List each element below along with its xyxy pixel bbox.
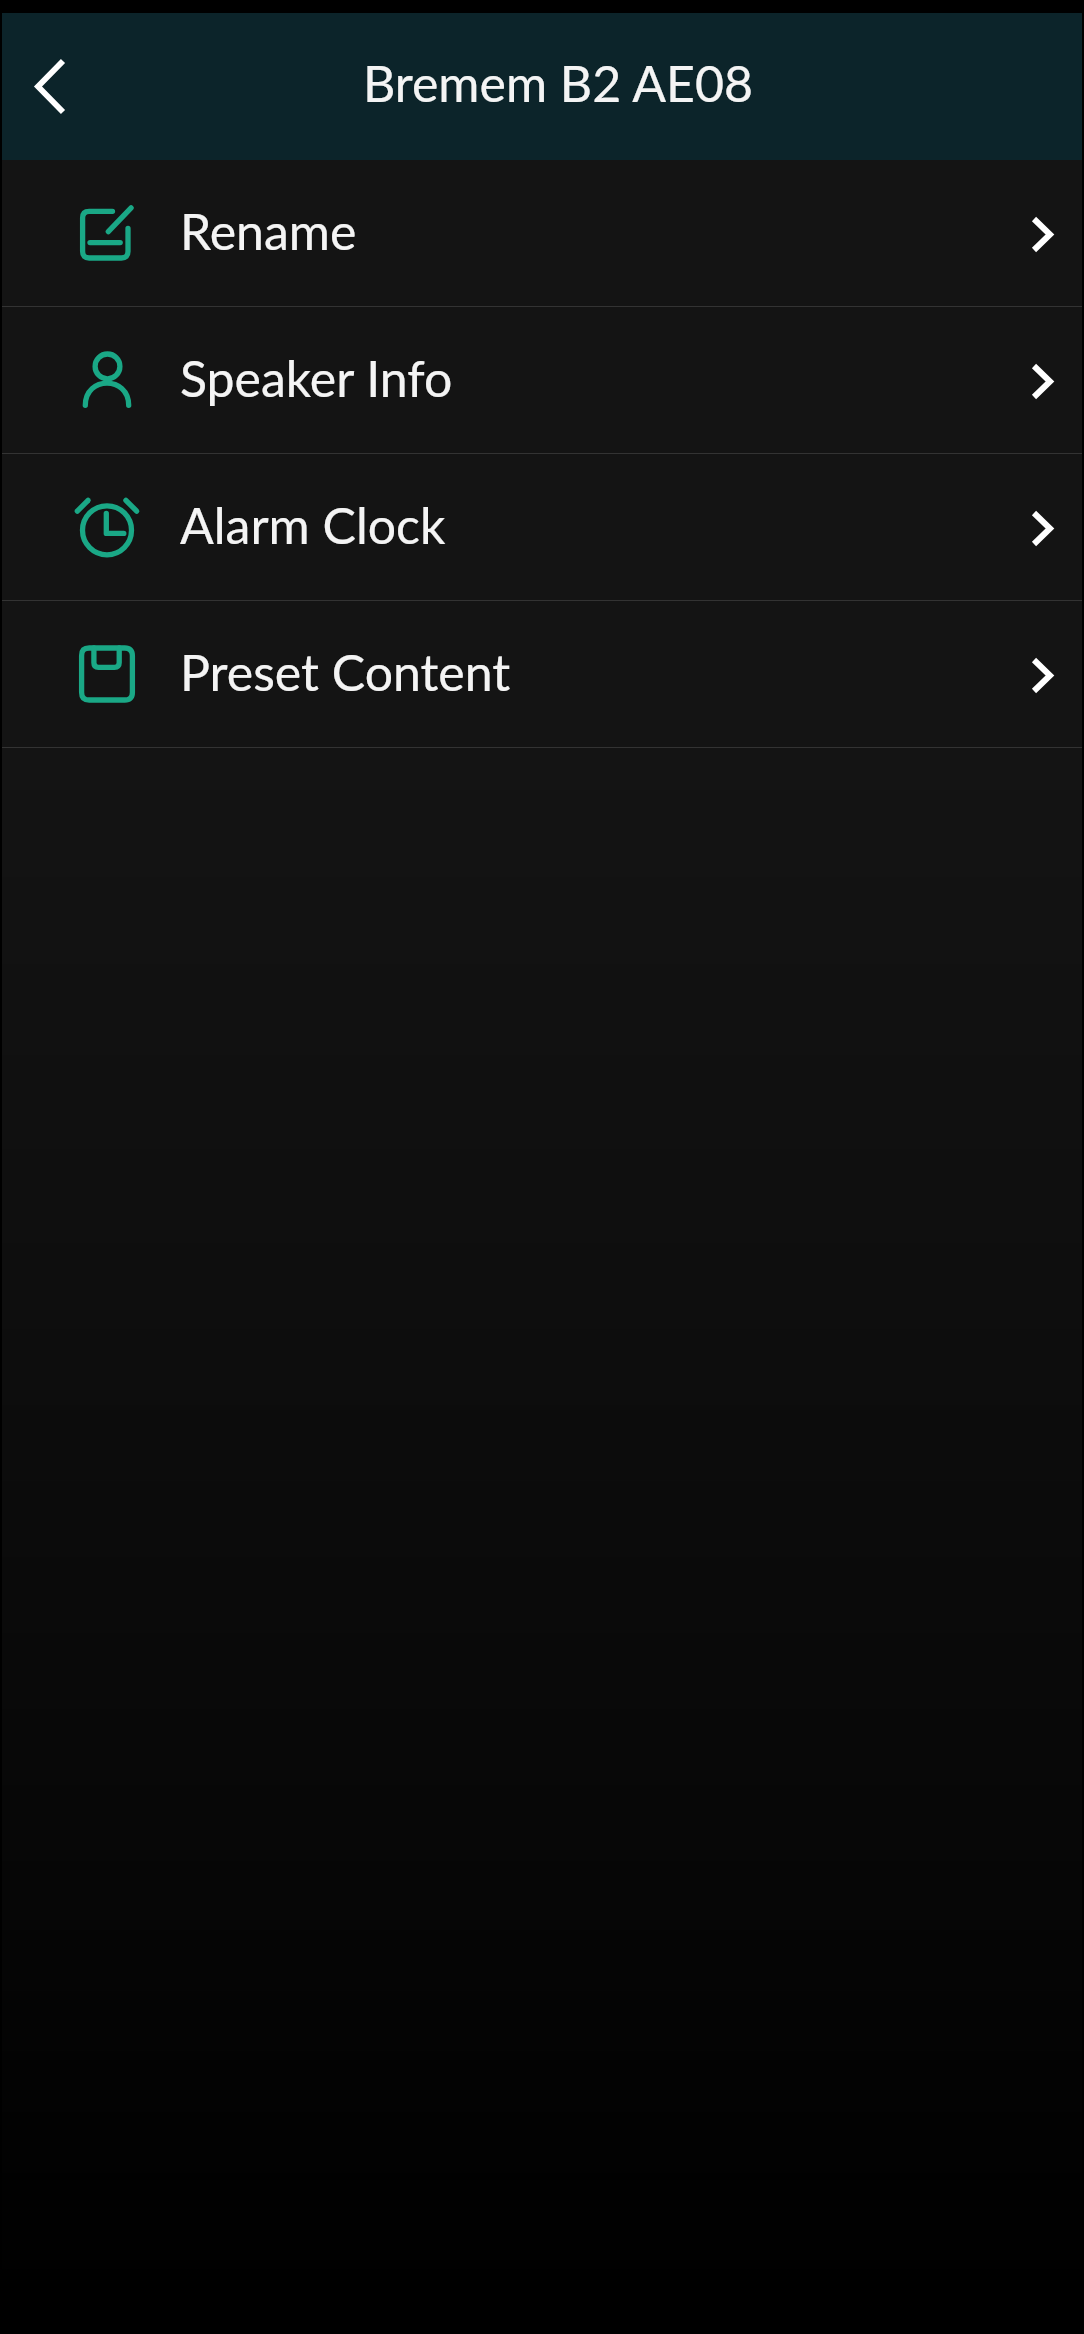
button[interactable]: Preset Content [2,601,1082,747]
staticText: Speaker Info [180,348,453,408]
button[interactable]: Rename [2,160,1082,306]
staticText: Bremem B2 AE08 [363,53,753,113]
staticText: Alarm Clock [180,495,446,555]
button[interactable]: Back [2,13,101,160]
button[interactable]: Speaker Info [2,307,1082,453]
staticText: Preset Content [180,642,511,702]
staticText: Rename [180,201,357,261]
button[interactable]: Alarm Clock [2,454,1082,600]
